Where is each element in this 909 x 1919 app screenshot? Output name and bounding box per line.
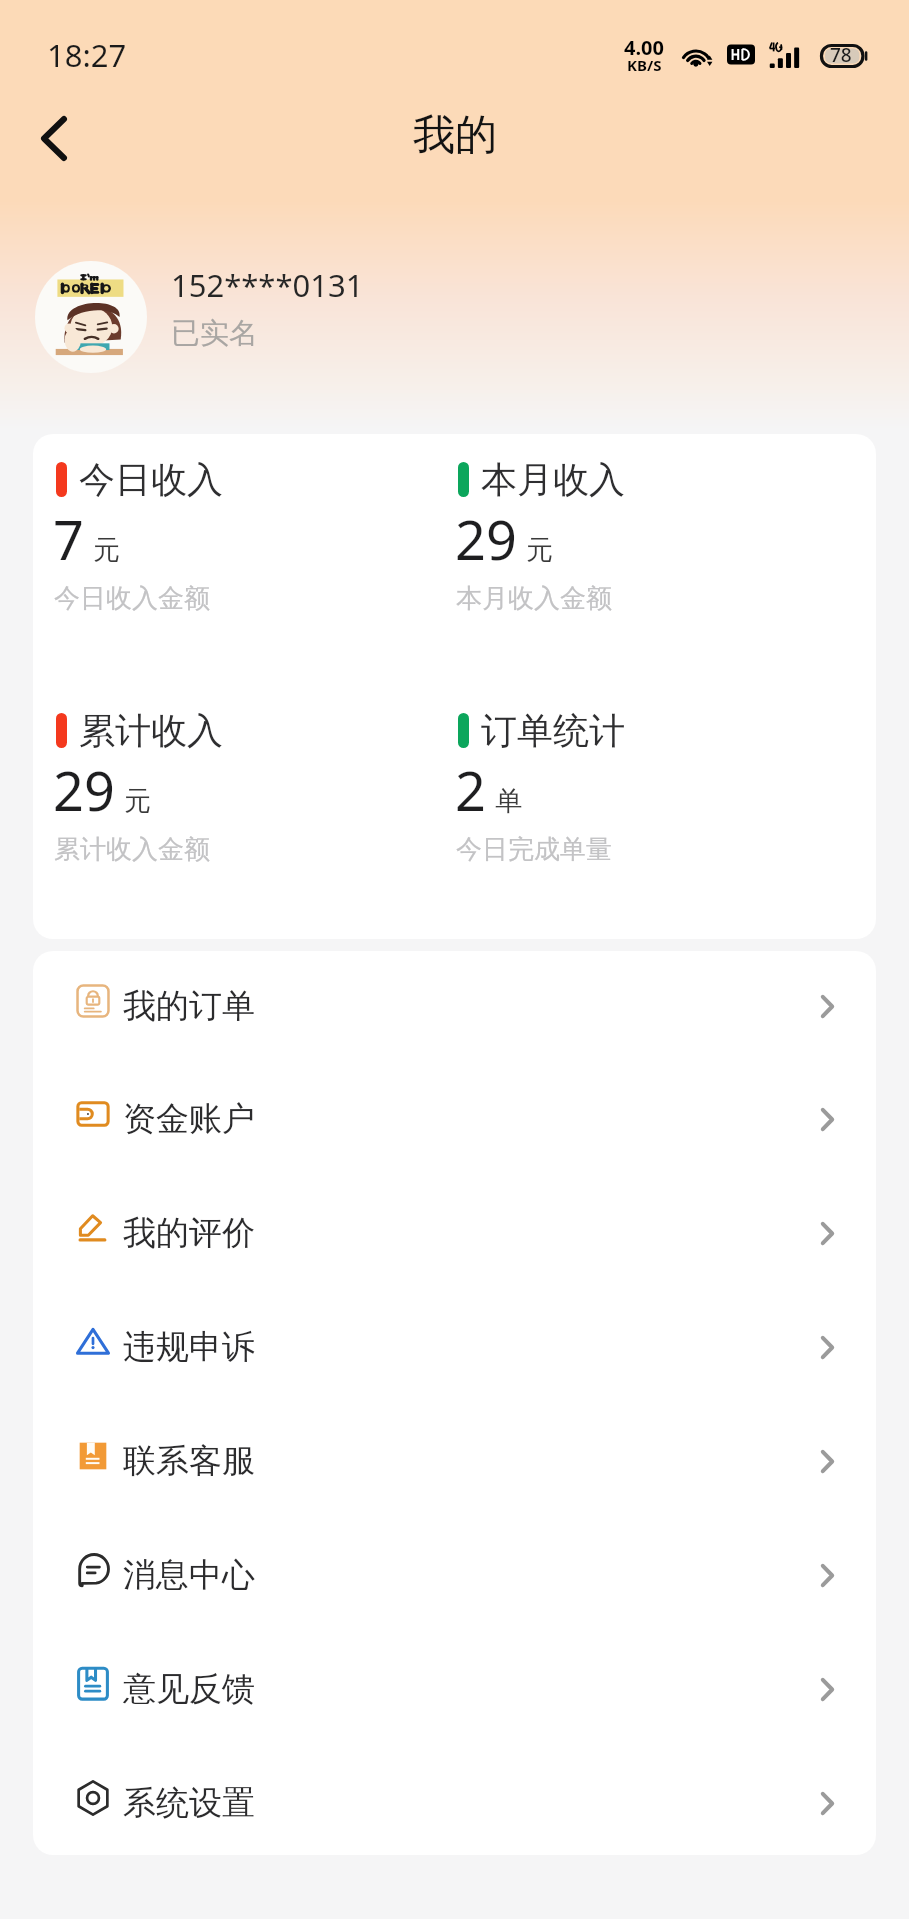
staticText: 本月收入金额 [456, 582, 612, 615]
staticText: 7 [53, 502, 84, 576]
staticText: 我的评价 [123, 1212, 255, 1254]
staticText: 2 [455, 753, 486, 827]
staticText: 152****0131 [171, 264, 364, 306]
staticText: 系统设置 [123, 1782, 255, 1824]
button[interactable]: 违规申诉 [33, 1296, 876, 1398]
staticText: 资金账户 [123, 1098, 255, 1140]
staticText: 意见反馈 [123, 1668, 255, 1710]
staticText: 我的订单 [123, 985, 255, 1027]
staticText: 累计收入 [79, 708, 223, 753]
staticText: 我的 [413, 109, 497, 162]
button[interactable]: 消息中心 [33, 1524, 876, 1626]
staticText: 今日收入金额 [54, 582, 210, 615]
button[interactable]: 152****0131 [35, 261, 364, 373]
staticText: 单 [495, 784, 522, 818]
button[interactable]: 意见反馈 [33, 1638, 876, 1740]
button[interactable]: 我的评价 [33, 1182, 876, 1284]
button[interactable]: Back [12, 96, 96, 180]
button[interactable]: 系统设置 [33, 1752, 876, 1854]
staticText: 元 [93, 533, 120, 567]
staticText: 已实名 [171, 315, 258, 352]
staticText: 29 [53, 753, 115, 827]
staticText: 元 [526, 533, 553, 567]
staticText: 78 [830, 42, 852, 68]
staticText: 累计收入金额 [54, 833, 210, 866]
button[interactable]: 资金账户 [33, 1068, 876, 1170]
staticText: 18:27 [47, 34, 127, 76]
staticText: 29 [455, 502, 517, 576]
staticText: 本月收入 [481, 457, 625, 502]
button[interactable]: 联系客服 [33, 1410, 876, 1512]
staticText: 4.00 [624, 34, 664, 61]
staticText: 今日收入 [79, 457, 223, 502]
staticText: 违规申诉 [123, 1326, 255, 1368]
staticText: 消息中心 [123, 1554, 255, 1596]
staticText: 元 [124, 784, 151, 818]
staticText: 今日完成单量 [456, 833, 612, 866]
staticText: KB/S [627, 55, 662, 75]
staticText: 联系客服 [123, 1440, 255, 1482]
button[interactable]: 我的订单 [33, 955, 876, 1057]
staticText: 订单统计 [481, 708, 625, 753]
